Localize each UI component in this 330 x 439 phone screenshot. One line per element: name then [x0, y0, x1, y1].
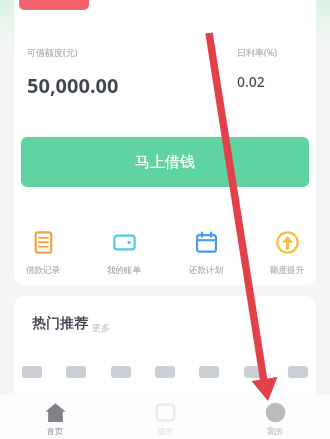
button[interactable]: Service: [111, 366, 131, 378]
staticText: 还款计划: [189, 265, 223, 276]
staticText: 额度: [157, 426, 173, 436]
button[interactable]: Service: [199, 366, 219, 378]
button[interactable]: Service: [288, 366, 308, 378]
button[interactable]: Service: [66, 366, 86, 378]
button[interactable]: 额度: [110, 395, 220, 439]
button[interactable]: 额度提升: [258, 231, 316, 276]
staticText: 可借额度(元): [27, 46, 78, 58]
staticText: 马上借钱: [135, 153, 195, 172]
button[interactable]: 我的: [220, 395, 330, 439]
other: 首页: [45, 402, 66, 423]
staticText: 50,000.00: [27, 72, 119, 99]
other: 额度: [155, 402, 176, 423]
button[interactable]: 首页: [0, 395, 110, 439]
button[interactable]: Service: [244, 366, 264, 378]
button[interactable]: 借款记录: [14, 231, 72, 276]
staticText: 0.02: [237, 72, 265, 91]
staticText: 更多: [92, 322, 110, 333]
staticText: 借款记录: [26, 265, 60, 276]
button[interactable]: 还款计划: [177, 231, 235, 276]
staticText: 热门推荐: [32, 315, 88, 333]
staticText: 日利率(%): [237, 46, 277, 58]
button[interactable]: Service: [155, 366, 175, 378]
staticText: 我的账单: [107, 265, 141, 276]
staticText: 额度提升: [270, 265, 304, 276]
staticText: 首页: [47, 426, 63, 436]
button[interactable]: 我的账单: [95, 231, 153, 276]
staticText: 我的: [267, 426, 283, 436]
button[interactable]: 马上借钱: [21, 137, 309, 187]
button[interactable]: Service: [22, 366, 42, 378]
other: 我的: [265, 402, 286, 423]
